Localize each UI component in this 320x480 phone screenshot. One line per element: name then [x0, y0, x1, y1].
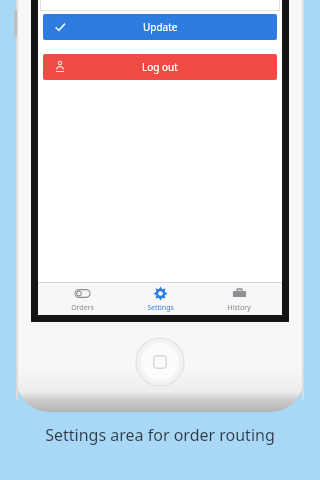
staticText: Update — [143, 20, 178, 34]
button[interactable]: Orders — [47, 283, 117, 315]
staticText: Settings area for order routing — [0, 424, 320, 446]
button[interactable]: Log out — [43, 54, 277, 80]
staticText: Settings — [147, 303, 174, 313]
staticText: Log out — [142, 60, 178, 74]
button[interactable]: Update — [43, 14, 277, 40]
button[interactable]: History — [204, 283, 274, 315]
staticText: Orders — [71, 303, 94, 313]
button[interactable]: Settings — [125, 283, 195, 315]
staticText: History — [227, 303, 251, 313]
